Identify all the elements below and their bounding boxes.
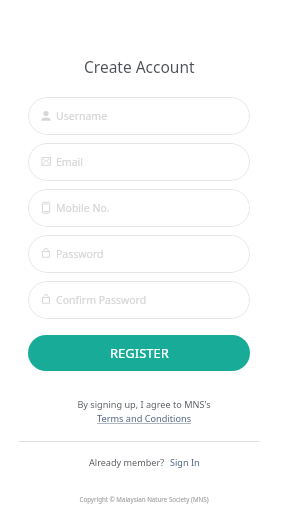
- staticText: Confirm Password: [56, 293, 147, 307]
- staticText: Terms and Conditions: [97, 412, 192, 425]
- button[interactable]: Email: [28, 143, 250, 181]
- staticText: Password: [56, 247, 104, 261]
- button[interactable]: Sign In: [170, 456, 200, 468]
- button[interactable]: Mobile No.: [28, 189, 250, 227]
- staticText: REGISTER: [110, 344, 169, 362]
- button[interactable]: Confirm Password: [28, 281, 250, 319]
- staticText: Email: [56, 155, 83, 169]
- button[interactable]: Password: [28, 235, 250, 273]
- staticText: Create Account: [84, 56, 195, 77]
- button[interactable]: Terms and Conditions: [97, 412, 192, 425]
- staticText: Mobile No.: [56, 201, 110, 215]
- staticText: Username: [56, 109, 108, 123]
- button[interactable]: Username: [28, 97, 250, 135]
- staticText: Sign In: [170, 456, 200, 468]
- staticText: Already member?: [89, 456, 165, 468]
- button[interactable]: REGISTER: [28, 335, 250, 371]
- staticText: By signing up, I agree to MNS's: [77, 398, 211, 410]
- staticText: Copyright © Malaysian Nature Society (MN…: [79, 495, 209, 503]
